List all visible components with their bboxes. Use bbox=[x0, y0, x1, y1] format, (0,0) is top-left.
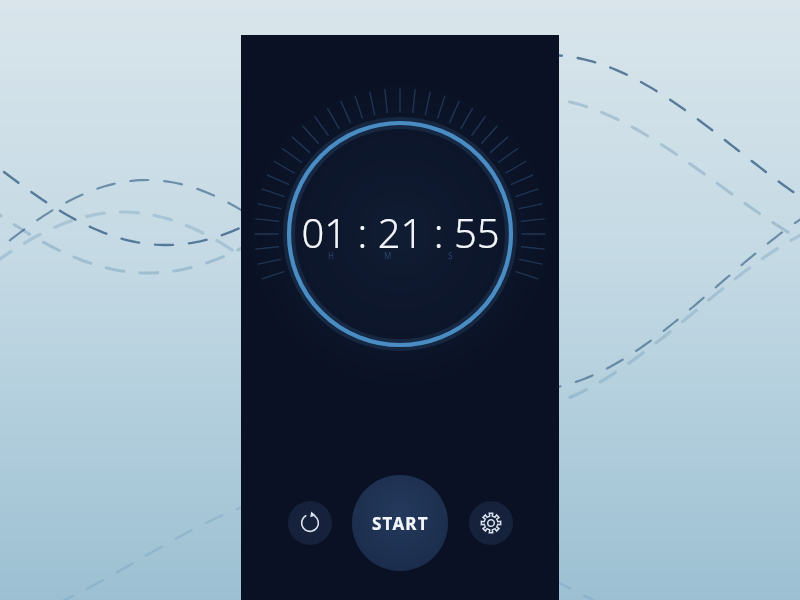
staticText: S bbox=[448, 250, 453, 261]
staticText: M bbox=[384, 250, 392, 261]
staticText: 01 : 21 : 55 bbox=[301, 205, 500, 259]
button[interactable]: Settings bbox=[469, 501, 513, 545]
button[interactable]: Reset bbox=[288, 501, 332, 545]
button[interactable]: START bbox=[352, 475, 448, 571]
staticText: START bbox=[372, 512, 429, 535]
staticText: H bbox=[328, 250, 335, 261]
